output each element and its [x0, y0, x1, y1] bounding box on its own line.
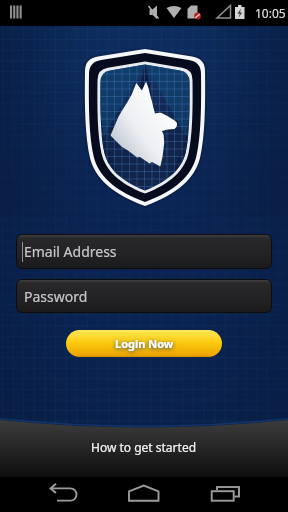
staticText: How to get started	[91, 439, 197, 455]
button[interactable]: Password	[17, 280, 271, 312]
button[interactable]: Login Now	[66, 330, 222, 357]
button[interactable]: How to get started	[0, 436, 288, 458]
button[interactable]: Email Address	[17, 235, 271, 268]
staticText: 10:05	[255, 5, 286, 21]
staticText: Password	[24, 287, 88, 306]
staticText: Email Address	[24, 242, 117, 261]
staticText: Login Now	[115, 336, 174, 351]
button[interactable]	[44, 477, 84, 512]
button[interactable]	[124, 477, 164, 512]
button[interactable]	[202, 477, 246, 512]
